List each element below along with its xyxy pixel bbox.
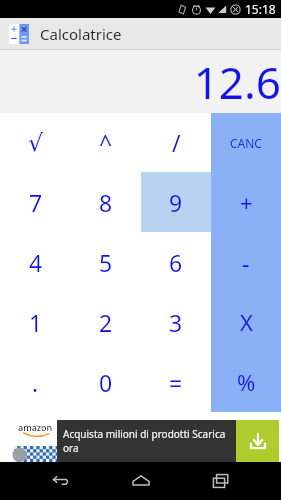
button[interactable]: + [211,172,281,232]
staticText: 4 [29,247,43,278]
staticText: 5 [99,247,113,278]
button[interactable]: 3 [141,292,211,352]
button[interactable]: 8 [71,172,141,232]
staticText: . [32,367,39,398]
staticText: amazon [18,421,53,433]
staticText: 3 [169,307,183,338]
staticText: 12.6 [193,52,281,112]
button[interactable]: / [141,113,211,172]
staticText: % [237,367,256,397]
staticText: 9 [169,187,183,218]
staticText: ^ [99,127,113,158]
button[interactable]: 5 [71,232,141,292]
button[interactable]: 0 [71,352,141,412]
staticText: Acquista milioni di prodotti Scarica ora [63,427,232,455]
staticText: 7 [29,187,43,218]
button[interactable]: . [0,352,71,412]
button[interactable]: Acquista milioni di prodotti Scarica ora [57,420,236,462]
button[interactable]: 2 [71,292,141,352]
staticText: 0 [99,367,113,398]
button[interactable]: Download [236,420,279,462]
staticText: √ [28,129,44,157]
staticText: + [240,187,253,217]
button[interactable]: 6 [141,232,211,292]
staticText: 8 [99,187,113,218]
staticText: 2 [99,307,113,338]
button[interactable]: Recent apps [201,462,241,500]
button[interactable]: Home [121,462,161,500]
staticText: CANC [230,135,262,151]
staticText: / [172,127,181,158]
button[interactable]: 9 [141,172,211,232]
button[interactable]: ^ [71,113,141,172]
button[interactable]: √ [0,113,71,172]
staticText: 1 [29,307,43,338]
button[interactable]: % [211,352,281,412]
staticText: = [169,367,183,398]
staticText: 6 [169,247,183,278]
button[interactable]: Back [40,462,80,500]
button[interactable]: 4 [0,232,71,292]
button[interactable]: - [211,232,281,292]
button[interactable]: CANC [211,113,281,172]
staticText: Calcolatrice [40,24,122,44]
button[interactable]: 7 [0,172,71,232]
staticText: X [240,307,253,337]
button[interactable]: = [141,352,211,412]
button[interactable]: X [211,292,281,352]
staticText: - [242,247,250,278]
button[interactable]: 1 [0,292,71,352]
staticText: 15:18 [245,1,276,17]
